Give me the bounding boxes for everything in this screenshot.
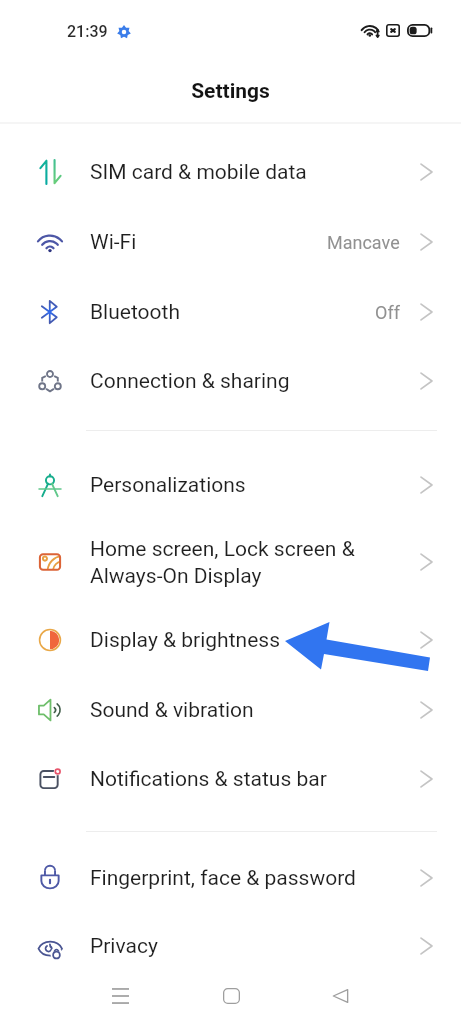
staticText: Settings (191, 79, 270, 104)
staticText: Sound & vibration (90, 698, 420, 723)
button[interactable]: Fingerprint, face & password (0, 843, 461, 913)
staticText: SIM card & mobile data (90, 160, 420, 185)
staticText: Bluetooth (90, 300, 375, 325)
button[interactable]: Connection & sharing (0, 346, 461, 416)
button[interactable]: Personalizations (0, 450, 461, 520)
staticText: Fingerprint, face & password (90, 866, 420, 891)
staticText: 21:39 (67, 22, 108, 41)
staticText: Privacy (90, 934, 420, 959)
button[interactable]: Notifications & status bar (0, 744, 461, 814)
button[interactable]: Sound & vibration (0, 675, 461, 745)
staticText: Display & brightness (90, 628, 420, 653)
staticText: Notifications & status bar (90, 767, 420, 792)
button[interactable]: Home screen, Lock screen & Always-On Dis… (0, 519, 461, 605)
button[interactable]: Bluetooth (0, 277, 461, 347)
button[interactable]: SIM card & mobile data (0, 137, 461, 207)
staticText: Personalizations (90, 473, 420, 498)
button[interactable]: Recent apps (96, 972, 144, 1020)
button[interactable]: Wi-Fi (0, 207, 461, 277)
staticText: Off (375, 302, 400, 323)
staticText: Home screen, Lock screen & Always-On Dis… (90, 537, 420, 588)
staticText: Connection & sharing (90, 369, 420, 394)
staticText: Mancave (327, 232, 400, 253)
button[interactable]: Back (316, 972, 364, 1020)
staticText: Wi-Fi (90, 230, 327, 255)
button[interactable]: Privacy (0, 911, 461, 981)
button[interactable]: Home (207, 972, 255, 1020)
button[interactable]: Display & brightness (0, 605, 461, 675)
